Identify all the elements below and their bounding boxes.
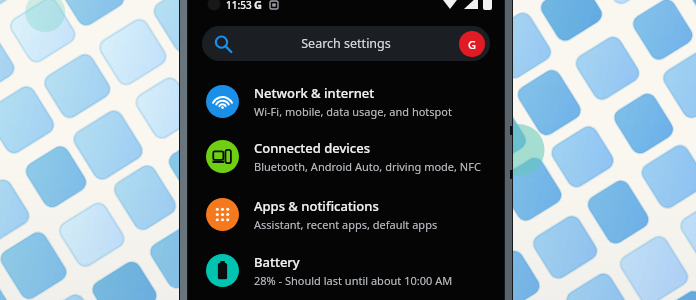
staticText: Wi-Fi, mobile, data usage, and hotspot [254,104,452,119]
staticText: Network & internet [254,84,375,102]
staticText: G [468,37,476,52]
button[interactable]: Connected devices [188,136,506,176]
staticText: 28% - Should last until about 10:00 AM [254,273,453,288]
staticText: Assistant, recent apps, default apps [254,217,438,232]
button[interactable]: Search [202,26,490,61]
button[interactable]: Account [459,31,485,57]
staticText: Connected devices [254,139,371,157]
staticText: Apps & notifications [254,197,379,215]
staticText: Search settings [301,35,391,52]
staticText: Bluetooth, Android Auto, driving mode, N… [254,159,481,174]
button[interactable]: Apps & notifications [188,194,506,234]
button[interactable]: Battery [188,250,506,290]
other: Search [214,35,231,52]
staticText: 11:53 [226,0,252,12]
staticText: G [254,0,262,12]
button[interactable]: Network & internet [188,81,506,121]
staticText: Battery [254,253,300,271]
